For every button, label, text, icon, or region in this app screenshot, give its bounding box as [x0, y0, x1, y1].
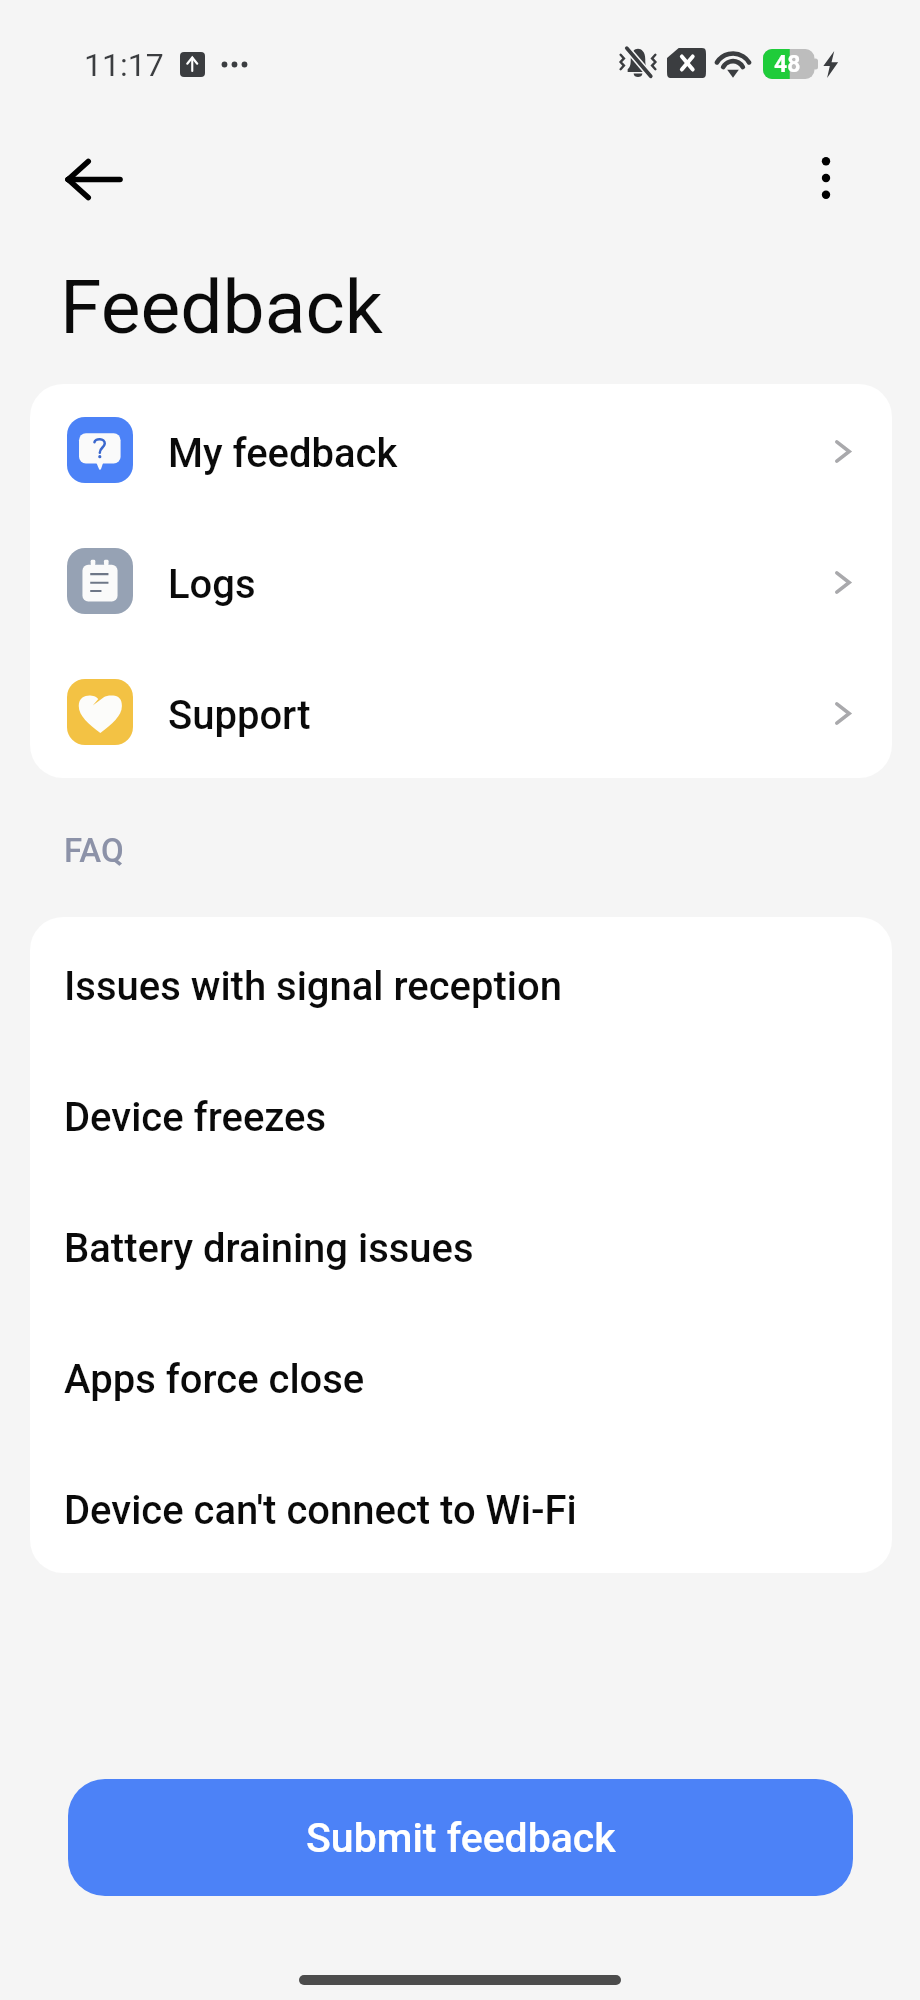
staticText: Apps force close: [64, 1356, 365, 1403]
staticText: Feedback: [60, 263, 383, 351]
staticText: My feedback: [168, 430, 398, 477]
button[interactable]: More options: [790, 142, 862, 214]
staticText: Logs: [168, 561, 256, 608]
button[interactable]: Device freezes: [30, 1048, 892, 1179]
button[interactable]: Battery draining issues: [30, 1179, 892, 1310]
staticText: FAQ: [64, 831, 124, 870]
staticText: Device freezes: [64, 1094, 327, 1141]
staticText: Issues with signal reception: [64, 963, 562, 1010]
staticText: Support: [168, 692, 311, 739]
staticText: 48: [774, 51, 801, 78]
staticText: Battery draining issues: [64, 1225, 474, 1272]
button[interactable]: Device can't connect to Wi-Fi: [30, 1441, 892, 1572]
staticText: 11:17: [84, 46, 164, 84]
button[interactable]: Logs: [30, 515, 892, 646]
button[interactable]: Issues with signal reception: [30, 917, 892, 1048]
button[interactable]: My feedback: [30, 384, 892, 515]
staticText: Device can't connect to Wi-Fi: [64, 1487, 577, 1534]
button[interactable]: Submit feedback: [68, 1779, 853, 1896]
button[interactable]: Support: [30, 646, 892, 777]
staticText: Submit feedback: [306, 1814, 616, 1862]
button[interactable]: Back: [57, 142, 131, 216]
button[interactable]: Apps force close: [30, 1310, 892, 1441]
